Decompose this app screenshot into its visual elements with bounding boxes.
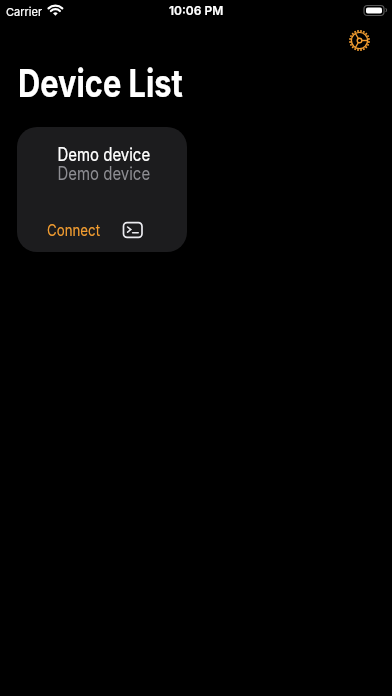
- button[interactable]: [345, 26, 374, 55]
- staticText: Carrier: [6, 5, 43, 18]
- staticText: Connect: [47, 220, 100, 239]
- button[interactable]: [120, 219, 146, 241]
- staticText: Device List: [18, 60, 183, 106]
- staticText: Demo device: [57, 163, 150, 185]
- staticText: Demo device: [57, 144, 150, 166]
- button[interactable]: Connect: [41, 215, 105, 241]
- staticText: 10:06 PM: [169, 3, 224, 18]
